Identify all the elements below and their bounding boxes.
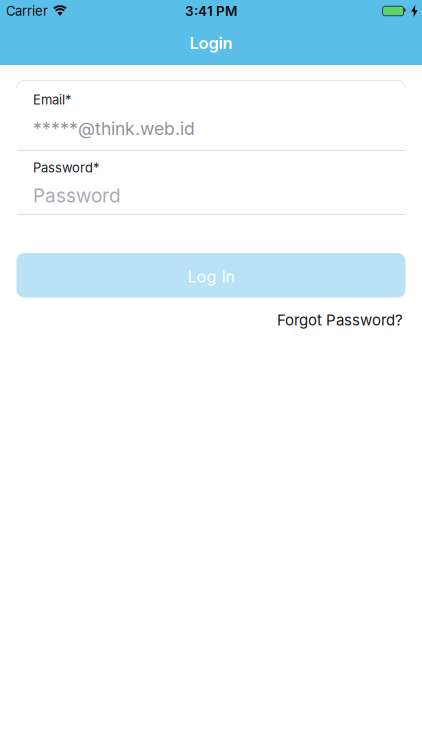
button[interactable]: Log In [16, 253, 405, 297]
staticText: Carrier [6, 3, 48, 19]
staticText: Password* [33, 160, 100, 176]
staticText: 3:41 PM [185, 3, 237, 19]
button[interactable]: Forgot Password? [277, 311, 403, 329]
staticText: Log In [187, 267, 234, 286]
staticText: Forgot Password? [277, 311, 403, 329]
button[interactable]: Password [17, 184, 406, 215]
button[interactable]: *****@think.web.id [17, 118, 406, 151]
staticText: Email* [33, 92, 72, 108]
staticText: *****@think.web.id [33, 118, 195, 139]
staticText: Login [189, 33, 232, 53]
staticText: Password [33, 184, 121, 207]
